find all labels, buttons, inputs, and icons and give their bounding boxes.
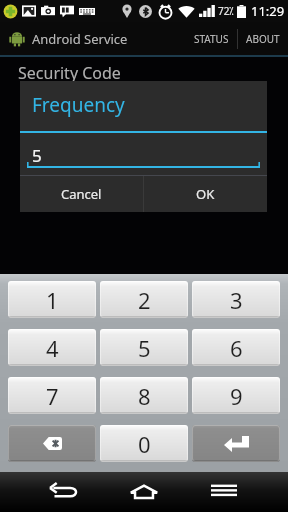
button[interactable]: 8 xyxy=(100,377,188,414)
staticText: Frequency xyxy=(32,92,125,118)
staticText: 5 xyxy=(32,144,42,167)
staticText: 2 xyxy=(138,285,151,315)
button[interactable]: 9 xyxy=(192,377,280,414)
staticText: 5 xyxy=(138,333,151,363)
button[interactable]: 6 xyxy=(192,329,280,366)
staticText: Android Service xyxy=(32,30,128,48)
staticText: 7 xyxy=(46,381,59,411)
button[interactable]: Delete xyxy=(8,425,96,462)
button[interactable]: 5 xyxy=(100,329,188,366)
button[interactable]: 1 xyxy=(8,281,96,318)
staticText: 1 xyxy=(46,285,59,315)
staticText: STATUS xyxy=(194,32,229,46)
button[interactable]: 4 xyxy=(8,329,96,366)
button[interactable]: 7 xyxy=(8,377,96,414)
staticText: 4 xyxy=(46,333,59,363)
button[interactable]: 0 xyxy=(100,425,188,462)
staticText: 3 xyxy=(230,285,243,315)
staticText: 0 xyxy=(138,429,151,459)
staticText: 72⁒ xyxy=(218,4,234,18)
button[interactable]: 3 xyxy=(192,281,280,318)
button[interactable]: STATUS xyxy=(186,22,237,55)
staticText: 8 xyxy=(138,381,151,411)
button[interactable]: Cancel xyxy=(20,176,143,212)
button[interactable]: Home xyxy=(128,472,160,512)
button[interactable]: 2 xyxy=(100,281,188,318)
staticText: 6 xyxy=(230,333,243,363)
button[interactable]: ABOUT xyxy=(238,22,288,55)
button[interactable]: Recent apps xyxy=(160,472,288,512)
button[interactable]: Back xyxy=(0,472,128,512)
button[interactable]: Enter xyxy=(192,425,280,462)
staticText: Security Code xyxy=(18,62,121,84)
staticText: OK xyxy=(196,185,215,203)
staticText: ABOUT xyxy=(246,32,280,46)
staticText: 9 xyxy=(230,381,243,411)
staticText: Cancel xyxy=(61,185,102,203)
button[interactable]: OK xyxy=(144,176,267,212)
staticText: 11:29 xyxy=(251,2,285,20)
